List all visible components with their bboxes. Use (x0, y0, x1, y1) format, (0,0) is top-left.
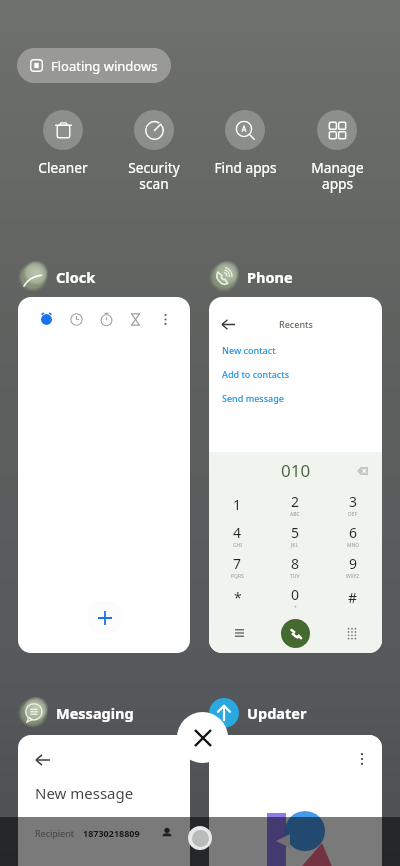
staticText: Manage apps (311, 158, 364, 193)
staticText: 5 (291, 523, 300, 542)
staticText: 3 (349, 492, 358, 511)
staticText: Find apps (214, 158, 277, 177)
other: Backspace (357, 467, 368, 475)
button[interactable]: Floating windows (17, 48, 171, 83)
staticText: + (294, 604, 297, 611)
button[interactable]: Send message (209, 386, 382, 410)
button[interactable]: 3 (324, 489, 382, 520)
button[interactable]: Close all (177, 712, 228, 763)
button[interactable]: Security scan (108, 110, 199, 193)
staticText: Add to contacts (222, 368, 290, 380)
button[interactable]: Add alarm (88, 601, 121, 634)
button[interactable]: 1 (209, 489, 266, 520)
staticText: 7 (233, 554, 242, 573)
button[interactable]: Find apps (199, 110, 291, 177)
staticText: Phone (247, 267, 293, 287)
button[interactable]: 7 (209, 551, 266, 582)
other: Back (222, 318, 235, 331)
staticText: 010 (281, 459, 311, 482)
button[interactable]: 5 (266, 520, 324, 551)
button[interactable]: # (324, 582, 382, 613)
other: More options (356, 753, 368, 765)
other: Back (36, 753, 50, 767)
staticText: 18730218809 (83, 827, 140, 839)
staticText: 4 (233, 523, 242, 542)
button[interactable]: Manage apps (291, 110, 383, 193)
staticText: 2 (291, 492, 300, 511)
button[interactable]: Call (281, 619, 310, 648)
staticText: Send message (222, 392, 285, 404)
button[interactable]: 9 (324, 551, 382, 582)
staticText: Recents (279, 318, 313, 330)
staticText: Clock (56, 267, 96, 287)
staticText: TUV (290, 573, 300, 580)
staticText: Messaging (56, 703, 134, 723)
staticText: Recipient (35, 827, 75, 839)
staticText: ABC (290, 511, 300, 518)
button[interactable]: 0 (266, 582, 324, 613)
staticText: 9 (349, 554, 358, 573)
staticText: New contact (222, 344, 276, 356)
button[interactable]: Add alarm (18, 297, 190, 653)
staticText: GHI (233, 542, 243, 549)
button[interactable]: Add to contacts (209, 362, 382, 386)
staticText: # (348, 588, 358, 607)
staticText: 6 (349, 523, 358, 542)
staticText: Updater (247, 703, 307, 723)
button[interactable]: New contact (209, 338, 382, 362)
button[interactable]: 4 (209, 520, 266, 551)
button[interactable]: Home (188, 826, 212, 850)
button[interactable]: Back (18, 735, 190, 866)
staticText: * (234, 588, 242, 607)
staticText: Cleaner (38, 158, 88, 177)
button[interactable]: More options (209, 735, 382, 866)
staticText: Security scan (128, 158, 180, 193)
staticText: JKL (291, 542, 299, 549)
staticText: Floating windows (51, 57, 158, 75)
button[interactable]: 8 (266, 551, 324, 582)
staticText: New message (35, 783, 134, 803)
button[interactable]: 6 (324, 520, 382, 551)
staticText: PQRS (231, 573, 244, 580)
button[interactable]: 2 (266, 489, 324, 520)
other: Call history (235, 629, 244, 637)
button[interactable]: Back (209, 297, 382, 653)
staticText: 0 (291, 585, 300, 604)
staticText: MNO (347, 542, 360, 549)
button[interactable]: * (209, 582, 266, 613)
button[interactable]: Cleaner (17, 110, 108, 177)
staticText: 8 (291, 554, 300, 573)
staticText: WXYZ (346, 573, 360, 580)
staticText: 1 (233, 495, 242, 514)
other: Keypad (348, 628, 356, 639)
staticText: DEF (348, 511, 358, 518)
